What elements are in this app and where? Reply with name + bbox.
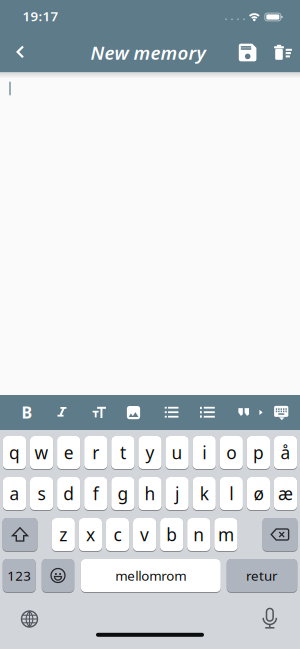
button[interactable]: m: [214, 518, 237, 552]
button[interactable]: n: [187, 518, 210, 552]
button[interactable]: y: [138, 436, 162, 470]
staticText: s: [38, 482, 46, 505]
staticText: v: [140, 523, 149, 546]
staticText: q: [9, 441, 20, 464]
button[interactable]: z: [52, 518, 75, 552]
button[interactable]: Delete: [268, 35, 298, 69]
button[interactable]: Dictation: [253, 601, 287, 635]
button[interactable]: i: [193, 436, 216, 470]
staticText: 123: [7, 567, 31, 584]
button[interactable]: k: [193, 477, 216, 511]
button[interactable]: retur: [227, 559, 297, 593]
button[interactable]: æ: [274, 477, 297, 511]
button[interactable]: mellomrom: [81, 559, 221, 593]
staticText: p: [253, 441, 264, 464]
button[interactable]: s: [30, 477, 53, 511]
staticText: 19:17: [22, 7, 58, 25]
staticText: å: [280, 441, 290, 464]
button[interactable]: l: [220, 477, 243, 511]
button[interactable]: a: [3, 477, 26, 511]
staticText: k: [200, 482, 209, 505]
staticText: l: [229, 482, 233, 505]
staticText: c: [113, 523, 121, 546]
staticText: r: [92, 441, 99, 464]
button[interactable]: o: [220, 436, 243, 470]
button[interactable]: Hide keyboard: [268, 396, 294, 429]
button[interactable]: j: [165, 477, 189, 511]
button[interactable]: e: [57, 436, 80, 470]
staticText: a: [9, 482, 19, 505]
button[interactable]: p: [247, 436, 270, 470]
button[interactable]: Bold: [13, 396, 41, 429]
staticText: d: [63, 482, 74, 505]
button[interactable]: Quote: [232, 395, 256, 428]
button[interactable]: Numbers: [3, 559, 36, 593]
staticText: B: [21, 402, 32, 423]
button[interactable]: Insert image: [119, 396, 147, 429]
staticText: b: [166, 523, 177, 546]
button[interactable]: Next keyboard: [12, 602, 46, 636]
button[interactable]: Save: [233, 35, 263, 69]
staticText: f: [93, 482, 99, 505]
staticText: retur: [246, 567, 278, 584]
staticText: o: [226, 441, 236, 464]
staticText: New memory: [90, 40, 205, 65]
staticText: z: [59, 523, 67, 546]
staticText: m: [218, 523, 234, 546]
button[interactable]: Numbered list: [193, 396, 221, 429]
button[interactable]: Italic: [48, 395, 76, 428]
staticText: n: [193, 523, 204, 546]
button[interactable]: Emoji: [42, 559, 74, 593]
staticText: mellomrom: [115, 567, 186, 584]
staticText: i: [202, 441, 206, 464]
staticText: t: [120, 441, 126, 464]
staticText: w: [35, 441, 49, 464]
button[interactable]: d: [57, 477, 80, 511]
staticText: y: [145, 441, 154, 464]
staticText: g: [117, 482, 128, 505]
staticText: u: [172, 441, 183, 464]
button[interactable]: Shift: [2, 518, 37, 552]
button[interactable]: q: [3, 436, 26, 470]
button[interactable]: w: [30, 436, 53, 470]
staticText: h: [144, 482, 155, 505]
button[interactable]: u: [165, 436, 189, 470]
button[interactable]: t: [111, 436, 134, 470]
staticText: x: [86, 523, 95, 546]
staticText: j: [175, 482, 179, 505]
button[interactable]: g: [111, 477, 134, 511]
button[interactable]: v: [133, 518, 156, 552]
button[interactable]: Delete: [262, 518, 297, 552]
button[interactable]: More formatting options: [255, 396, 267, 429]
button[interactable]: Back: [4, 35, 36, 69]
button[interactable]: ø: [247, 477, 270, 511]
button[interactable]: f: [84, 477, 107, 511]
button[interactable]: å: [274, 436, 297, 470]
button[interactable]: c: [106, 518, 129, 552]
button[interactable]: Bulleted list: [158, 396, 186, 429]
staticText: e: [64, 441, 74, 464]
staticText: ø: [253, 482, 263, 505]
button[interactable]: Text size: [85, 396, 113, 429]
button[interactable]: b: [160, 518, 183, 552]
button[interactable]: x: [79, 518, 102, 552]
button[interactable]: h: [138, 477, 162, 511]
staticText: æ: [278, 482, 293, 505]
button[interactable]: r: [84, 436, 107, 470]
